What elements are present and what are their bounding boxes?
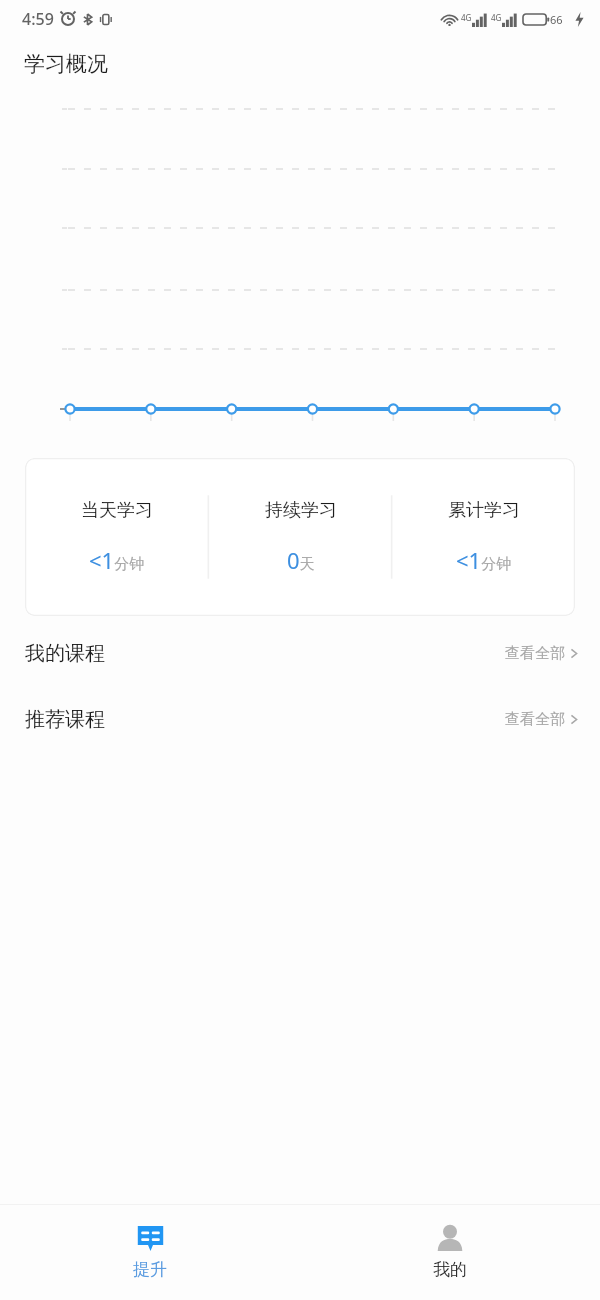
staticText: 查看全部	[505, 644, 565, 663]
button[interactable]: 提升	[0, 1205, 300, 1300]
staticText: 当天学习	[81, 499, 153, 522]
button[interactable]: 当天学习	[25, 458, 575, 616]
button[interactable]: 我的课程	[0, 620, 600, 686]
staticText: 推荐课程	[25, 707, 105, 732]
staticText: 查看全部	[505, 710, 565, 729]
staticText: 学习概况	[24, 51, 108, 77]
button[interactable]: 持续学习	[209, 458, 392, 616]
staticText: 我的	[433, 1259, 467, 1280]
button[interactable]: 当天学习	[25, 458, 209, 616]
staticText: <1分钟	[456, 545, 512, 575]
staticText: 4G	[461, 12, 472, 23]
staticText: 4:59	[22, 8, 54, 30]
staticText: 我的课程	[25, 641, 105, 666]
staticText: 4G	[491, 12, 502, 23]
staticText: 0天	[287, 545, 315, 575]
staticText: <1分钟	[89, 545, 145, 575]
staticText: 提升	[133, 1259, 167, 1280]
button[interactable]: 累计学习	[392, 458, 575, 616]
staticText: 累计学习	[448, 499, 520, 522]
button[interactable]: 推荐课程	[0, 686, 600, 752]
button[interactable]: 我的	[300, 1205, 600, 1300]
staticText: 持续学习	[265, 499, 337, 522]
staticText: 66	[550, 12, 563, 27]
